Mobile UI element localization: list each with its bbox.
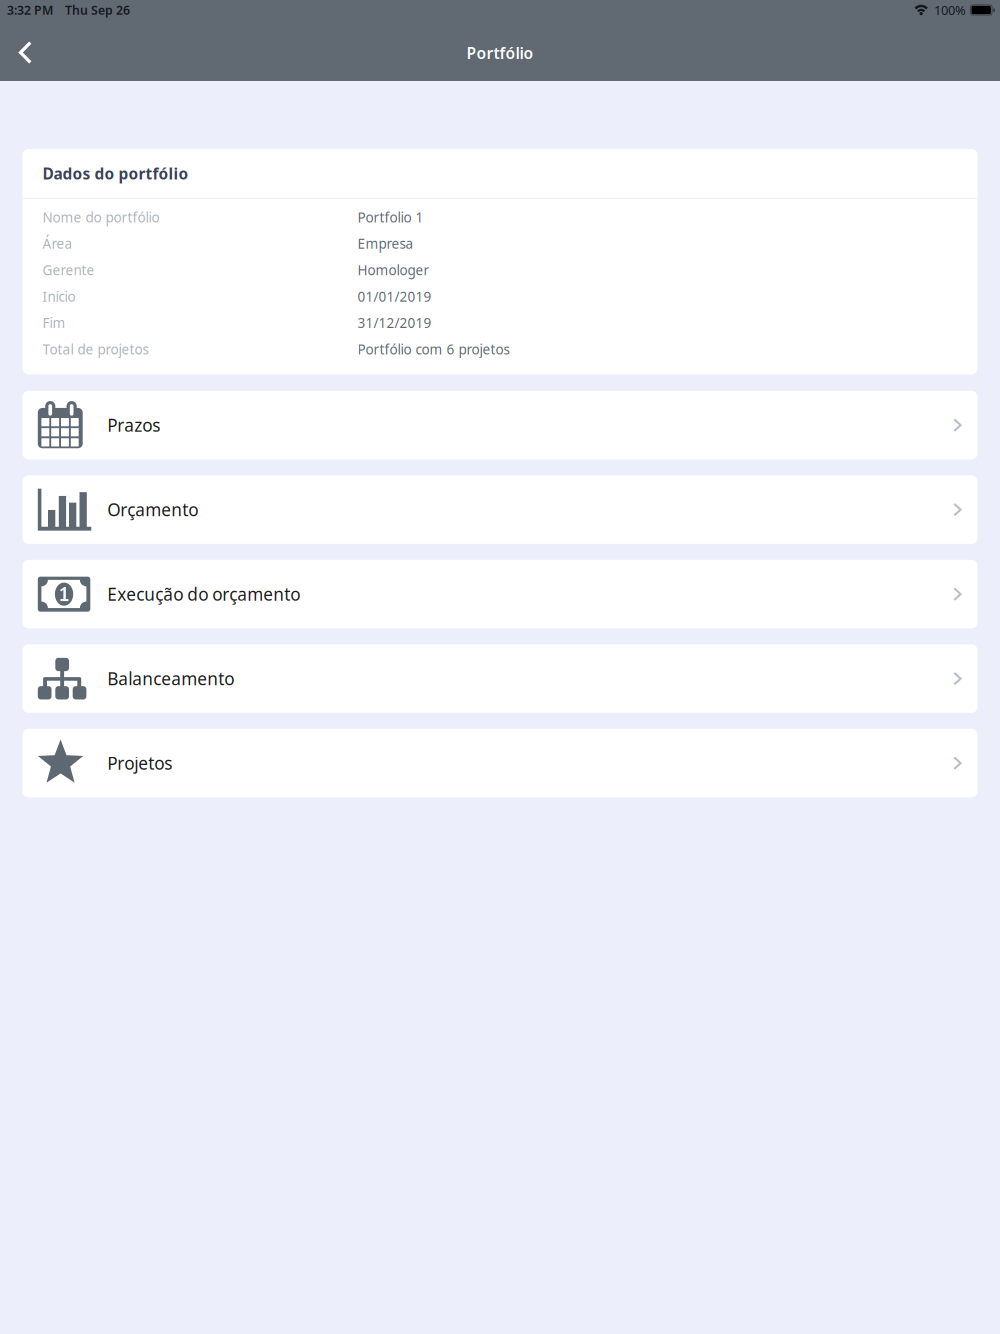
- staticText: Homologer: [357, 261, 429, 279]
- staticText: Execução do orçamento: [107, 582, 300, 606]
- staticText: Thu Sep 26: [65, 2, 130, 18]
- staticText: Início: [42, 287, 75, 306]
- button[interactable]: Orçamento: [22, 475, 977, 544]
- staticText: 31/12/2019: [357, 314, 431, 332]
- button[interactable]: Projetos: [22, 729, 977, 797]
- staticText: Gerente: [42, 261, 94, 279]
- staticText: 3:32 PM: [7, 2, 53, 18]
- staticText: Área: [42, 234, 72, 253]
- staticText: Balanceamento: [107, 667, 234, 690]
- button[interactable]: Back: [0, 25, 62, 81]
- button[interactable]: Execução do orçamento: [22, 560, 977, 628]
- button[interactable]: Prazos: [22, 391, 977, 459]
- staticText: Total de projetos: [42, 340, 148, 358]
- staticText: Prazos: [107, 413, 160, 437]
- staticText: Projetos: [107, 751, 172, 775]
- staticText: Portfolio 1: [357, 208, 423, 226]
- staticText: Portfólio: [466, 42, 533, 64]
- staticText: Nome do portfólio: [42, 208, 159, 226]
- staticText: 01/01/2019: [357, 287, 431, 306]
- staticText: Portfólio com 6 projetos: [357, 340, 509, 358]
- staticText: Empresa: [357, 234, 413, 253]
- button[interactable]: Balanceamento: [22, 644, 977, 713]
- staticText: Orçamento: [107, 498, 198, 521]
- staticText: 100%: [934, 1, 966, 19]
- staticText: Dados do portfólio: [42, 163, 188, 184]
- staticText: Fim: [42, 314, 65, 332]
